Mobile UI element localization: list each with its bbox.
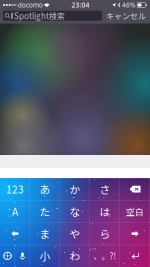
staticText: 、。?! bbox=[93, 250, 116, 262]
button[interactable]: 空白 bbox=[120, 200, 150, 222]
staticText: か bbox=[69, 181, 80, 197]
staticText: は bbox=[99, 204, 110, 219]
button[interactable]: Dictation bbox=[15, 245, 30, 267]
button[interactable]: や bbox=[60, 222, 90, 245]
staticText: わ bbox=[69, 248, 80, 264]
staticText: た bbox=[39, 204, 50, 219]
button[interactable]: ら bbox=[90, 222, 120, 245]
button[interactable]: あ bbox=[30, 178, 60, 200]
button[interactable]: Move right bbox=[120, 222, 150, 245]
staticText: ま bbox=[39, 226, 50, 241]
staticText: キャンセル bbox=[106, 10, 146, 22]
staticText: ら bbox=[99, 226, 110, 241]
button[interactable]: 、。?! bbox=[90, 245, 120, 267]
button[interactable]: な bbox=[60, 200, 90, 222]
staticText: 小 bbox=[39, 248, 50, 264]
staticText: な bbox=[69, 204, 80, 219]
staticText: あ bbox=[39, 181, 50, 197]
staticText: docomo bbox=[18, 1, 43, 9]
button[interactable]: キャンセル bbox=[105, 10, 147, 22]
button[interactable]: た bbox=[30, 200, 60, 222]
staticText: や bbox=[69, 226, 80, 241]
button[interactable]: は bbox=[90, 200, 120, 222]
button[interactable]: A bbox=[0, 200, 30, 222]
staticText: Spotlight検索 bbox=[14, 10, 65, 22]
button[interactable]: 123 bbox=[0, 178, 30, 200]
button[interactable]: わ bbox=[60, 245, 90, 267]
staticText: 46% bbox=[122, 1, 136, 9]
staticText: 23:04 bbox=[72, 1, 90, 9]
staticText: A bbox=[12, 204, 18, 219]
staticText: 空白 bbox=[126, 205, 144, 218]
button[interactable]: か bbox=[60, 178, 90, 200]
button[interactable]: Move left bbox=[0, 222, 30, 245]
button[interactable]: Delete bbox=[120, 178, 150, 200]
button[interactable]: 小 bbox=[30, 245, 60, 267]
staticText: 123 bbox=[6, 182, 24, 196]
button[interactable]: Next keyboard bbox=[0, 245, 15, 267]
button[interactable]: Return bbox=[120, 245, 150, 267]
staticText: さ bbox=[99, 181, 110, 197]
button[interactable]: ま bbox=[30, 222, 60, 245]
button[interactable]: さ bbox=[90, 178, 120, 200]
